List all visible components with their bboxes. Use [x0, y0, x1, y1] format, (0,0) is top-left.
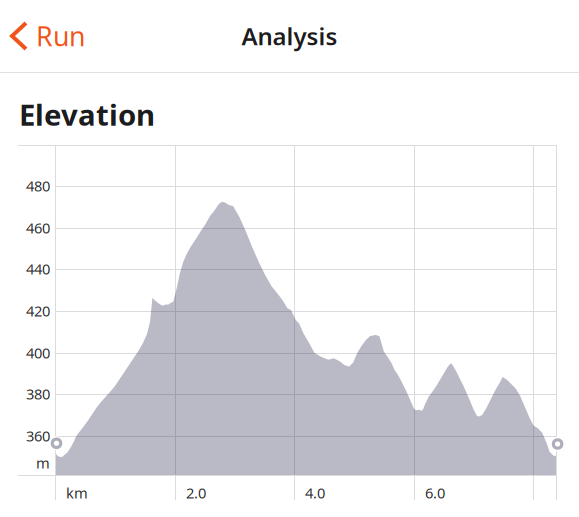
staticText: 440: [26, 259, 50, 278]
staticText: 380: [26, 384, 50, 403]
staticText: 480: [26, 176, 50, 195]
staticText: 460: [26, 218, 50, 237]
staticText: Run: [36, 18, 85, 54]
staticText: Elevation: [19, 95, 155, 134]
staticText: 360: [26, 426, 50, 445]
staticText: 4.0: [305, 483, 325, 502]
staticText: km: [66, 483, 88, 502]
button[interactable]: Run: [0, 0, 85, 72]
staticText: 420: [26, 301, 50, 320]
staticText: 2.0: [186, 483, 206, 502]
staticText: Analysis: [241, 20, 337, 52]
staticText: m: [36, 453, 50, 472]
staticText: 400: [26, 343, 50, 362]
staticText: 6.0: [425, 483, 445, 502]
